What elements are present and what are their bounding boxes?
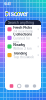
staticText: Top this week (13, 56, 34, 59)
staticText: Collections (13, 32, 32, 36)
staticText: Nearby (13, 43, 25, 47)
staticText: 24 new items (13, 30, 32, 33)
staticText: Curated for you (13, 37, 30, 44)
staticText: Discover (4, 10, 27, 18)
staticText: Search anything (8, 21, 34, 24)
button[interactable]: Profile (31, 83, 38, 89)
button[interactable]: Trending (5, 51, 41, 59)
staticText: Fresh Picks (13, 25, 32, 30)
button[interactable]: Saved (23, 83, 30, 89)
button[interactable]: Search (16, 83, 23, 89)
staticText: Trending (13, 51, 27, 55)
staticText: Within 2 km (13, 47, 31, 50)
button[interactable]: Fresh Picks (5, 25, 41, 34)
button[interactable]: Collections (5, 34, 41, 42)
button[interactable]: Nearby (5, 42, 41, 51)
button[interactable]: Home (8, 83, 15, 89)
staticText: 9:41 (4, 2, 10, 6)
